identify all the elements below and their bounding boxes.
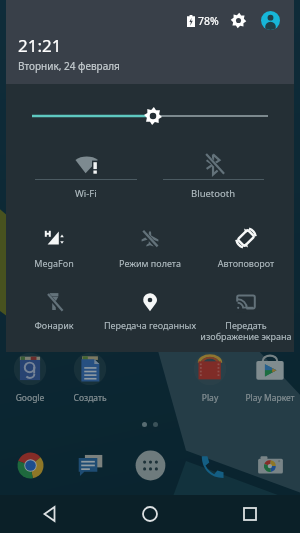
button[interactable]: Back [0, 495, 100, 533]
button[interactable]: All apps [120, 448, 180, 482]
button[interactable]: Phone [180, 448, 240, 482]
button[interactable]: Brightness [144, 107, 162, 125]
button[interactable]: Создать [60, 352, 120, 404]
staticText: Фонарик [6, 319, 102, 331]
button[interactable]: MegaFon [6, 216, 102, 282]
staticText: Режим полета [102, 257, 198, 269]
staticText: Вторник, 24 февраля [18, 59, 120, 73]
button[interactable]: Recent apps [200, 495, 300, 533]
button[interactable]: Автоповорот [198, 216, 294, 282]
button[interactable]: Google [0, 352, 60, 404]
staticText: Передать изображение экрана [198, 319, 294, 343]
staticText: Wi-Fi [75, 187, 97, 200]
button[interactable]: Bluetooth [150, 148, 294, 216]
staticText: Передача геоданных [102, 319, 198, 331]
button[interactable]: Передать изображение экрана [198, 282, 294, 352]
button[interactable]: Play [180, 352, 240, 404]
staticText: 21:21 [18, 34, 62, 57]
button[interactable]: Home [100, 495, 200, 533]
button[interactable]: Фонарик [6, 282, 102, 352]
button[interactable]: Play Маркет [240, 352, 300, 404]
staticText: Play Маркет [240, 392, 300, 404]
staticText: Google [0, 392, 60, 404]
button[interactable]: Messages [60, 448, 120, 482]
staticText: Play [180, 392, 240, 404]
button[interactable]: User profile [261, 11, 280, 30]
staticText: Автоповорот [198, 257, 294, 269]
button[interactable]: Wi-Fi [6, 148, 150, 216]
staticText: Bluetooth [191, 187, 236, 200]
button[interactable]: Camera [240, 448, 300, 482]
staticText: MegaFon [6, 257, 102, 269]
staticText: 78% [198, 14, 219, 28]
button[interactable]: Settings [230, 12, 247, 29]
button[interactable]: Chrome [0, 448, 60, 482]
button[interactable]: Передача геоданных [102, 282, 198, 352]
button[interactable]: Режим полета [102, 216, 198, 282]
staticText: Создать [60, 392, 120, 404]
